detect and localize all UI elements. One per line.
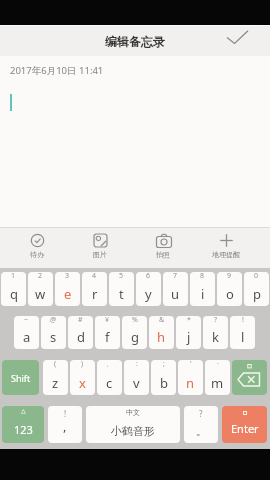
button[interactable]: 9 xyxy=(217,272,242,306)
button[interactable]: 中文 xyxy=(86,406,180,443)
button[interactable]: 待办 xyxy=(13,233,61,259)
staticText: Enter xyxy=(231,421,259,436)
staticText: w xyxy=(35,285,46,303)
button[interactable]: * xyxy=(176,316,201,349)
staticText: ; xyxy=(163,360,165,369)
button[interactable]: · xyxy=(205,360,230,395)
staticText: g xyxy=(131,328,139,346)
button[interactable] xyxy=(232,360,267,395)
staticText: x xyxy=(79,374,86,392)
button[interactable]: ? xyxy=(184,406,218,443)
staticText: 6 xyxy=(146,272,151,281)
button[interactable]: ? xyxy=(203,316,228,349)
button[interactable]: Enter xyxy=(222,406,267,443)
staticText: i xyxy=(201,285,205,303)
staticText: ? xyxy=(199,408,203,419)
staticText: 地理提醒 xyxy=(212,250,240,259)
staticText: 中文 xyxy=(126,408,140,417)
button[interactable]: 图片 xyxy=(76,233,124,259)
staticText: j xyxy=(187,328,191,346)
staticText: 小鹤音形 xyxy=(111,424,155,438)
staticText: 9 xyxy=(227,272,232,281)
staticText: y xyxy=(145,285,152,303)
staticText: s xyxy=(50,328,57,346)
staticText: # xyxy=(78,316,83,325)
button[interactable]: ) xyxy=(70,360,95,395)
staticText: 待办 xyxy=(30,250,44,259)
staticText: ! xyxy=(242,316,244,325)
button[interactable]: 1 xyxy=(1,272,26,306)
staticText: q xyxy=(10,285,18,303)
button[interactable]: 2 xyxy=(28,272,53,306)
staticText: n xyxy=(186,374,195,392)
staticText: e xyxy=(64,285,72,303)
staticText: m xyxy=(211,374,224,392)
staticText: a xyxy=(23,328,31,346)
button[interactable]: ! xyxy=(48,406,82,443)
button[interactable]: △ xyxy=(2,406,44,443)
button[interactable]: : xyxy=(124,360,149,395)
staticText: l xyxy=(241,328,245,346)
button[interactable]: ; xyxy=(151,360,176,395)
button[interactable]: # xyxy=(68,316,93,349)
button[interactable]: 拍照 xyxy=(139,233,187,259)
staticText: △ xyxy=(21,407,26,414)
staticText: z xyxy=(52,374,59,392)
staticText: 0 xyxy=(254,272,259,281)
staticText: c xyxy=(106,374,113,392)
staticText: ( xyxy=(54,360,57,369)
button[interactable]: & xyxy=(149,316,174,349)
button[interactable]: ' xyxy=(178,360,203,395)
staticText: · xyxy=(217,360,219,369)
staticText: 123 xyxy=(14,422,33,437)
button[interactable]: 地理提醒 xyxy=(202,233,250,259)
staticText: ? xyxy=(214,316,218,325)
staticText: 5 xyxy=(119,272,124,281)
button[interactable]: Shift xyxy=(2,360,39,395)
staticText: 3 xyxy=(65,272,70,281)
button[interactable] xyxy=(222,26,270,56)
button[interactable]: 8 xyxy=(190,272,215,306)
staticText: & xyxy=(159,316,165,325)
staticText: t xyxy=(119,285,124,303)
button[interactable]: 、 xyxy=(97,360,122,395)
staticText: 拍照 xyxy=(156,250,170,259)
staticText: p xyxy=(253,285,261,303)
staticText: 编辑备忘录 xyxy=(105,34,165,49)
staticText: ) xyxy=(81,360,84,369)
staticText: 、 xyxy=(106,360,113,368)
staticText: 。 xyxy=(196,424,207,438)
staticText: 7 xyxy=(173,272,178,281)
staticText: v xyxy=(133,374,140,392)
button[interactable]: 5 xyxy=(109,272,134,306)
staticText: o xyxy=(226,285,234,303)
staticText: r xyxy=(92,285,98,303)
staticText: f xyxy=(105,328,110,346)
staticText: 图片 xyxy=(93,250,107,259)
button[interactable]: 6 xyxy=(136,272,161,306)
button[interactable]: ! xyxy=(230,316,255,349)
staticText: u xyxy=(171,285,180,303)
staticText: % xyxy=(132,316,138,325)
button[interactable]: ¥ xyxy=(95,316,120,349)
staticText: @ xyxy=(50,316,57,325)
staticText: Shift xyxy=(11,372,31,384)
staticText: : xyxy=(136,360,138,369)
button[interactable]: 0 xyxy=(244,272,269,306)
button[interactable]: 4 xyxy=(82,272,107,306)
button[interactable]: 7 xyxy=(163,272,188,306)
staticText: 2017年6月10日 11:41 xyxy=(10,64,104,77)
staticText: 2 xyxy=(38,272,43,281)
button[interactable]: 3 xyxy=(55,272,80,306)
staticText: 1 xyxy=(11,272,16,281)
button[interactable]: ~ xyxy=(14,316,39,349)
staticText: 4 xyxy=(92,272,97,281)
button[interactable]: ( xyxy=(43,360,68,395)
button[interactable]: @ xyxy=(41,316,66,349)
staticText: ' xyxy=(190,360,192,369)
staticText: 8 xyxy=(200,272,205,281)
staticText: * xyxy=(187,316,191,325)
staticText: b xyxy=(160,374,168,392)
staticText: ¥ xyxy=(105,316,110,325)
button[interactable]: % xyxy=(122,316,147,349)
